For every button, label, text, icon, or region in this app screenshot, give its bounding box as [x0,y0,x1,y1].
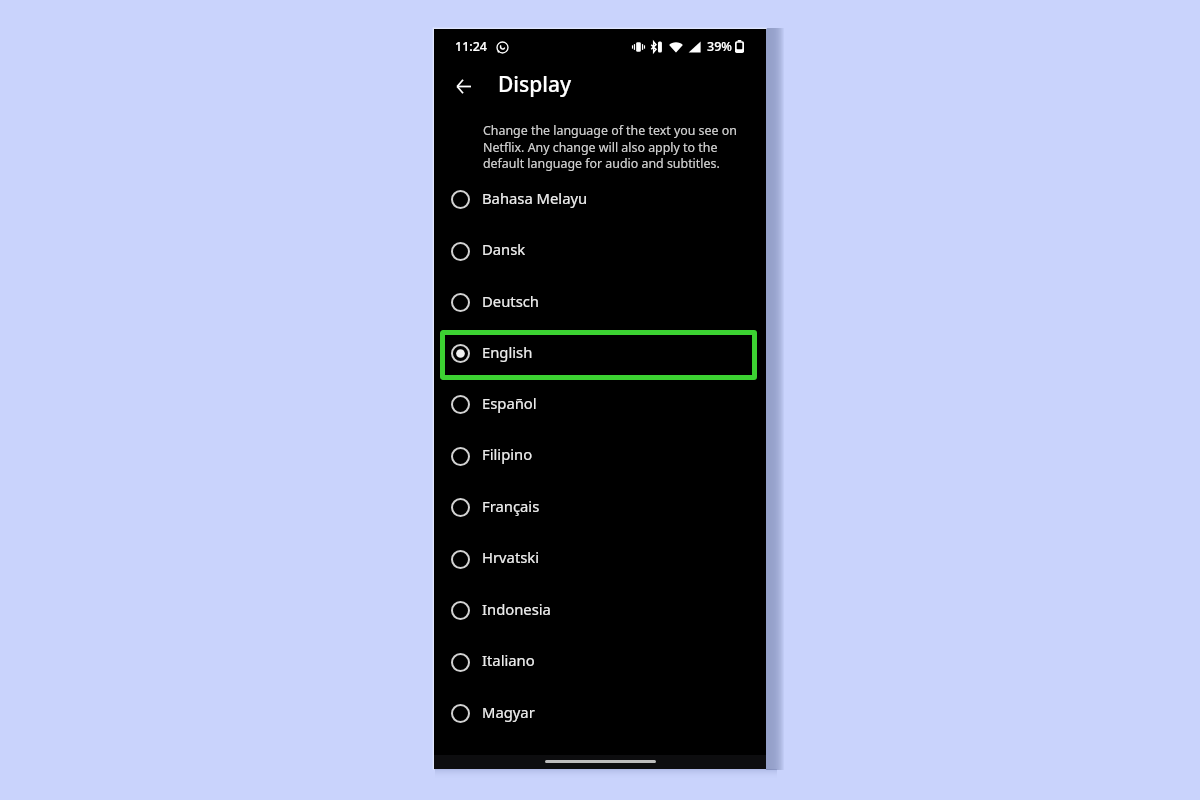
button[interactable]: Deutsch [434,277,766,328]
staticText: Indonesia [482,599,551,619]
staticText: Deutsch [482,291,539,311]
staticText: Français [482,496,540,516]
button[interactable]: Hrvatski [434,533,766,585]
button[interactable]: Filipino [434,430,766,482]
staticText: 11:24 [455,38,488,55]
button[interactable]: Français [434,482,766,533]
staticText: Bahasa Melayu [482,188,588,208]
button[interactable]: Back [440,66,486,107]
button[interactable]: Magyar [434,688,766,739]
staticText: Italiano [482,650,535,670]
staticText: Change the language of the text you see … [483,122,741,171]
staticText: Filipino [482,444,533,464]
staticText: Hrvatski [482,547,540,567]
button[interactable]: Dansk [434,225,766,277]
staticText: Display [498,70,572,99]
button[interactable]: Bahasa Melayu [434,174,766,225]
button[interactable]: Indonesia [434,585,766,636]
staticText: 39% [707,38,732,55]
staticText: Dansk [482,239,526,259]
button[interactable]: Italiano [434,636,766,688]
staticText: English [482,342,533,362]
button[interactable]: Español [434,379,766,430]
button[interactable]: English [434,328,766,379]
staticText: Español [482,393,537,413]
staticText: Magyar [482,702,535,722]
